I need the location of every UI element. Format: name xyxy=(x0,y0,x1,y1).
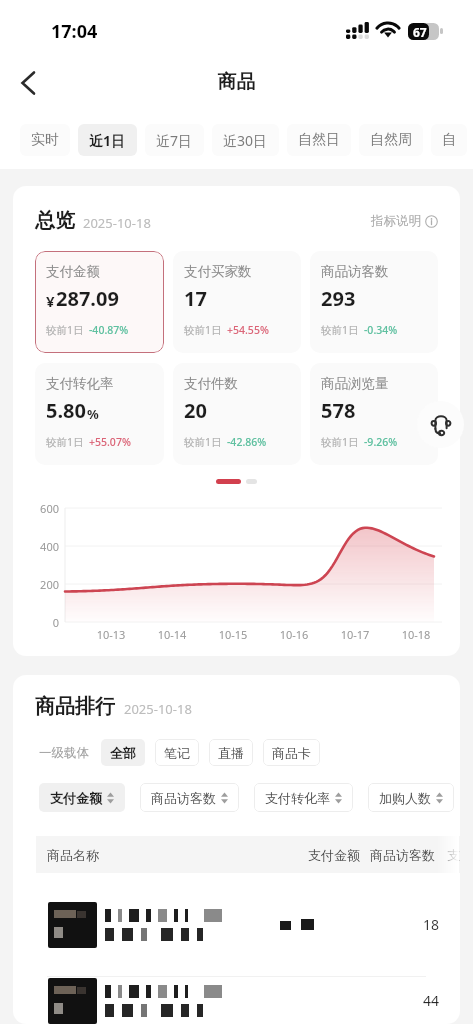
staticText: 293 xyxy=(321,285,356,312)
staticText: 指标说明 xyxy=(371,213,421,229)
staticText: 加购人数 xyxy=(379,790,431,806)
button[interactable]: 商品访客数 xyxy=(140,783,239,812)
button[interactable]: 商品卡 xyxy=(263,739,320,766)
staticText: 支付件数 xyxy=(184,375,238,392)
staticText: 10-18 xyxy=(396,627,436,642)
button[interactable]: 支付转化率 xyxy=(35,363,164,465)
button[interactable]: 近1日 xyxy=(78,124,137,156)
staticText: 全部 xyxy=(110,745,136,761)
staticText: -0.34% xyxy=(364,323,398,337)
staticText: 20 xyxy=(184,397,207,424)
staticText: 44 xyxy=(423,991,440,1010)
staticText: 10-15 xyxy=(213,627,253,642)
staticText: 一级载体 xyxy=(39,745,89,761)
staticText: 商品访客数 xyxy=(321,263,389,280)
staticText: 实时 xyxy=(31,131,59,149)
staticText: 支付转化率 xyxy=(265,790,330,806)
staticText: 10-13 xyxy=(91,627,131,642)
button[interactable]: Customer service xyxy=(417,401,464,448)
button[interactable]: 支付转化率 xyxy=(254,783,353,812)
button[interactable]: 直播 xyxy=(209,739,253,766)
staticText: 5.80 xyxy=(46,397,86,424)
staticText: 10-17 xyxy=(335,627,375,642)
staticText: 支付金额 xyxy=(46,263,100,280)
staticText: 较前1日 xyxy=(321,323,359,337)
staticText: 578 xyxy=(321,397,356,424)
staticText: 总览 xyxy=(35,208,75,233)
staticText: 67 xyxy=(413,24,427,40)
button[interactable]: Back xyxy=(6,61,50,105)
staticText: 2025-10-18 xyxy=(83,214,151,232)
staticText: 支 xyxy=(447,847,460,863)
staticText: 商品 xyxy=(0,70,473,94)
staticText: -42.86% xyxy=(227,435,267,449)
staticText: 较前1日 xyxy=(184,435,222,449)
staticText: 较前1日 xyxy=(46,323,84,337)
staticText: 商品名称 xyxy=(47,847,99,863)
staticText: 10-16 xyxy=(274,627,314,642)
staticText: 自然日 xyxy=(298,131,340,149)
staticText: 支付转化率 xyxy=(46,375,114,392)
button[interactable]: 商品浏览量 xyxy=(310,363,438,465)
button[interactable]: 支付件数 xyxy=(173,363,301,465)
button[interactable]: 自 xyxy=(431,124,467,156)
staticText: 287.09 xyxy=(56,285,119,312)
staticText: 商品浏览量 xyxy=(321,375,389,392)
staticText: 自然周 xyxy=(370,131,412,149)
staticText: 直播 xyxy=(218,745,244,761)
button[interactable]: 实时 xyxy=(20,124,70,156)
staticText: 商品访客数 xyxy=(370,847,435,863)
staticText: 600 xyxy=(25,501,59,516)
button[interactable]: 18 xyxy=(13,873,460,976)
button[interactable]: 近30日 xyxy=(212,124,279,156)
staticText: 18 xyxy=(423,915,440,934)
staticText: 2025-10-18 xyxy=(124,700,192,718)
staticText: 0 xyxy=(25,615,59,630)
staticText: 400 xyxy=(25,539,59,554)
button[interactable]: 自然日 xyxy=(287,124,351,156)
staticText: 商品卡 xyxy=(272,745,311,761)
staticText: 较前1日 xyxy=(321,435,359,449)
staticText: 近1日 xyxy=(89,131,126,150)
staticText: 近7日 xyxy=(156,131,193,150)
staticText: 200 xyxy=(25,577,59,592)
staticText: -40.87% xyxy=(89,323,129,337)
staticText: 较前1日 xyxy=(46,435,84,449)
button[interactable]: 44 xyxy=(13,977,460,1024)
staticText: 商品排行 xyxy=(35,694,115,719)
staticText: ¥ xyxy=(46,291,55,311)
button[interactable]: 自然周 xyxy=(359,124,423,156)
staticText: 支付金额 xyxy=(308,847,360,863)
staticText: 笔记 xyxy=(164,745,190,761)
button[interactable]: 支付买家数 xyxy=(173,251,301,353)
button[interactable]: 商品访客数 xyxy=(310,251,438,353)
button[interactable]: 加购人数 xyxy=(368,783,454,812)
staticText: 近30日 xyxy=(223,131,268,150)
staticText: +54.55% xyxy=(227,323,269,337)
staticText: 较前1日 xyxy=(184,323,222,337)
staticText: +55.07% xyxy=(89,435,131,449)
staticText: 自 xyxy=(442,131,456,149)
button[interactable]: 近7日 xyxy=(145,124,204,156)
button[interactable]: 支付金额 xyxy=(39,783,125,812)
staticText: 支付买家数 xyxy=(184,263,252,280)
staticText: -9.26% xyxy=(364,435,398,449)
staticText: % xyxy=(87,405,99,423)
staticText: 17 xyxy=(184,285,207,312)
button[interactable]: 笔记 xyxy=(155,739,199,766)
staticText: 商品访客数 xyxy=(151,790,216,806)
button[interactable]: 全部 xyxy=(101,739,145,766)
button[interactable]: 指标说明 xyxy=(371,213,438,229)
staticText: 17:04 xyxy=(51,19,98,44)
button[interactable]: 支付金额 xyxy=(35,251,164,353)
staticText: 支付金额 xyxy=(50,790,102,806)
staticText: 10-14 xyxy=(152,627,192,642)
